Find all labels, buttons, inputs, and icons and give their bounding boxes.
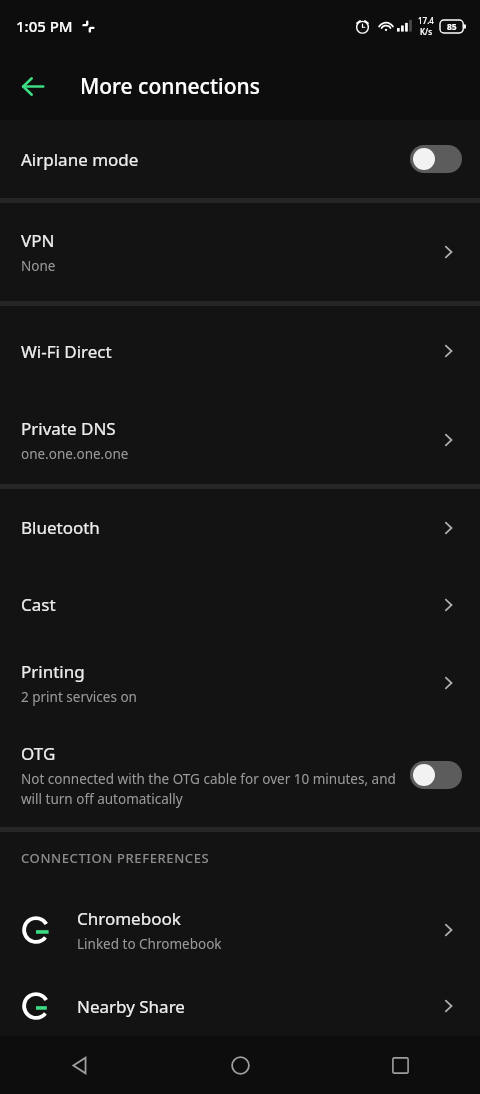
button[interactable]: Back <box>8 62 56 110</box>
button[interactable]: Airplane mode <box>0 120 480 198</box>
button[interactable]: Nearby Share <box>0 976 480 1036</box>
staticText: Chromebook <box>77 907 181 930</box>
button[interactable]: OTG <box>0 722 480 827</box>
button[interactable]: Private DNS <box>0 396 480 484</box>
staticText: Private DNS <box>21 417 116 440</box>
button[interactable]: Toggle <box>410 761 462 789</box>
button[interactable]: Chromebook <box>0 884 480 976</box>
staticText: Nearby Share <box>77 995 185 1018</box>
staticText: Not connected with the OTG cable for ove… <box>21 770 396 808</box>
button[interactable]: Recents <box>371 1036 429 1094</box>
button[interactable]: Cast <box>0 566 480 643</box>
button[interactable]: Printing <box>0 643 480 722</box>
staticText: Printing <box>21 660 85 683</box>
button[interactable]: VPN <box>0 203 480 301</box>
button[interactable]: Bluetooth <box>0 489 480 566</box>
staticText: CONNECTION PREFERENCES <box>21 849 210 867</box>
staticText: Wi-Fi Direct <box>21 340 437 363</box>
staticText: Bluetooth <box>21 516 437 539</box>
button[interactable]: Back <box>51 1036 109 1094</box>
staticText: None <box>21 257 56 275</box>
staticText: 85 <box>447 21 457 33</box>
staticText: one.one.one.one <box>21 445 129 463</box>
staticText: 1:05 PM <box>16 16 73 36</box>
staticText: Airplane mode <box>21 148 410 171</box>
staticText: 2 print services on <box>21 688 137 706</box>
staticText: K/s <box>420 26 433 37</box>
staticText: Linked to Chromebook <box>77 935 222 953</box>
staticText: VPN <box>21 229 55 252</box>
staticText: More connections <box>80 72 260 101</box>
button[interactable]: Wi-Fi Direct <box>0 306 480 396</box>
staticText: OTG <box>21 742 56 765</box>
button[interactable]: Toggle <box>410 145 462 173</box>
staticText: 17.4 <box>418 15 434 26</box>
staticText: Cast <box>21 593 437 616</box>
button[interactable]: Home <box>211 1036 269 1094</box>
